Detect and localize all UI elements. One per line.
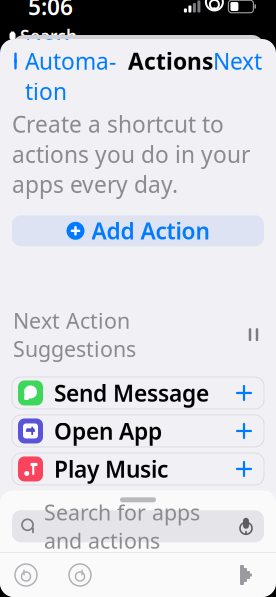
staticText: Next xyxy=(213,46,262,76)
button[interactable]: Next xyxy=(213,40,276,82)
staticText: Actions xyxy=(128,46,213,76)
staticText: Next Action Suggestions xyxy=(13,306,136,363)
staticText: Search for apps and actions xyxy=(44,498,200,555)
button[interactable]: Search for apps and actions xyxy=(12,510,264,542)
staticText: Search xyxy=(20,24,77,47)
staticText: Add Action xyxy=(91,216,209,246)
button[interactable]: New Automation xyxy=(0,10,116,112)
staticText: Play Music xyxy=(54,454,168,484)
button[interactable]: Send Message xyxy=(12,377,264,409)
button[interactable]: Run shortcut xyxy=(238,556,276,594)
staticText: Create a shortcut to actions you do in y… xyxy=(12,109,250,199)
button[interactable]: Open App xyxy=(12,415,264,447)
button[interactable]: Play Music xyxy=(12,453,264,485)
staticText: 5:06 xyxy=(28,0,73,21)
button[interactable]: Next Action Suggestions xyxy=(0,302,276,367)
staticText: Open App xyxy=(54,416,162,446)
staticText: New Automation xyxy=(25,16,116,106)
staticText: Send Message xyxy=(54,378,209,408)
button[interactable]: Redo xyxy=(38,554,92,596)
button[interactable]: Undo xyxy=(0,554,38,596)
button[interactable]: Add Action xyxy=(12,215,264,246)
